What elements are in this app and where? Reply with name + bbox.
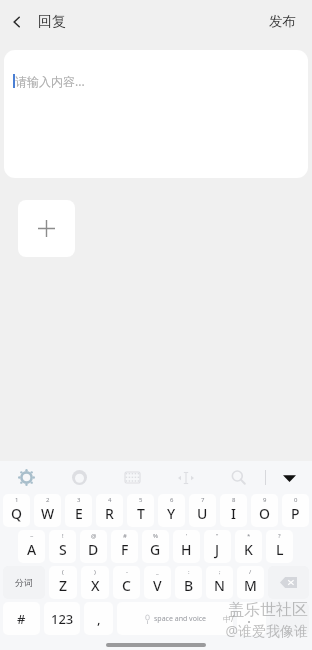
staticText: H [181,540,192,559]
staticText: / [249,568,252,576]
button[interactable]: 7 [189,494,216,527]
staticText: W [41,504,55,523]
button[interactable]: Emoji [53,461,106,494]
staticText: 6 [170,496,174,504]
button[interactable]: * [235,530,262,563]
button[interactable]: 4 [96,494,123,527]
button[interactable]: Backspace [268,566,309,599]
button[interactable]: 发布 [261,7,304,36]
staticText: 回复 [38,13,66,31]
button[interactable]: # [3,602,40,635]
staticText: L [276,540,284,559]
button[interactable]: " [204,530,231,563]
staticText: 3 [77,496,81,504]
staticText: O [259,504,270,523]
button[interactable]: ? [266,530,293,563]
staticText: _ [156,568,159,576]
button[interactable]: 2 [34,494,61,527]
staticText: space and voice [154,614,206,624]
button[interactable]: Settings [0,461,53,494]
button[interactable]: Hide keyboard [266,461,312,494]
staticText: 请输入内容... [15,73,85,89]
button[interactable]: ( [49,566,77,599]
button[interactable]: @ [80,530,107,563]
staticText: 4 [108,496,112,504]
staticText: , [97,610,101,628]
staticText: 8 [232,496,236,504]
staticText: ( [62,568,64,576]
staticText: # [17,610,26,628]
staticText: A [27,540,37,559]
staticText: 盖乐世社区 [228,600,308,620]
staticText: Q [11,504,22,523]
button[interactable]: 8 [220,494,247,527]
staticText: 0 [294,496,298,504]
staticText: ) [94,568,96,576]
staticText: Y [167,504,176,523]
staticText: 1 [15,496,19,504]
button[interactable]: 0 [282,494,309,527]
staticText: % [153,532,158,540]
staticText: C [122,576,131,595]
staticText: P [291,504,300,523]
staticText: S [59,540,67,559]
button[interactable]: 分词 [3,566,45,599]
button[interactable]: - [113,566,140,599]
staticText: ? [278,532,281,540]
button[interactable]: 1 [3,494,30,527]
button[interactable]: / [237,566,264,599]
staticText: ! [62,532,64,540]
staticText: ; [219,568,221,576]
button[interactable]: 3 [65,494,92,527]
button[interactable]: 9 [251,494,278,527]
staticText: M [244,576,257,595]
button[interactable]: 。 [237,602,266,635]
staticText: B [184,576,194,595]
staticText: 123 [51,610,74,628]
staticText: U [197,504,208,523]
staticText: 2 [46,496,50,504]
button[interactable]: 5 [127,494,154,527]
staticText: @ [91,532,97,540]
staticText: 。 [247,613,256,624]
staticText: F [121,540,129,559]
button[interactable]: : [175,566,202,599]
staticText: - [126,568,128,576]
staticText: # [123,532,127,540]
button[interactable]: Search [212,461,265,494]
button[interactable]: , [84,602,113,635]
staticText: ~ [30,532,34,540]
button[interactable]: ! [49,530,76,563]
staticText: K [244,540,253,559]
staticText: 中/ [223,613,234,624]
button[interactable]: Keyboard layout [106,461,159,494]
button[interactable]: Enter [270,602,309,635]
staticText: D [88,540,99,559]
button[interactable]: 123 [44,602,80,635]
button[interactable]: ~ [18,530,45,563]
staticText: 9 [263,496,267,504]
staticText: 7 [201,496,205,504]
staticText: N [214,576,225,595]
button[interactable]: Add image [18,200,75,257]
button[interactable]: % [142,530,169,563]
button[interactable]: Back [0,3,34,41]
button[interactable]: ' [173,530,200,563]
button[interactable]: Space and voice [117,602,233,635]
button[interactable]: # [111,530,138,563]
button[interactable]: ; [206,566,233,599]
button[interactable]: 请输入内容... [4,50,308,178]
button[interactable]: ) [81,566,109,599]
staticText: G [150,540,161,559]
staticText: : [188,568,190,576]
staticText: 5 [139,496,143,504]
button[interactable]: 6 [158,494,185,527]
staticText: V [153,576,162,595]
button[interactable]: _ [144,566,171,599]
staticText: Z [59,576,68,595]
staticText: X [91,576,100,595]
staticText: 发布 [269,13,296,30]
staticText: @谁爱我像谁 [225,621,308,640]
staticText: J [215,540,220,559]
